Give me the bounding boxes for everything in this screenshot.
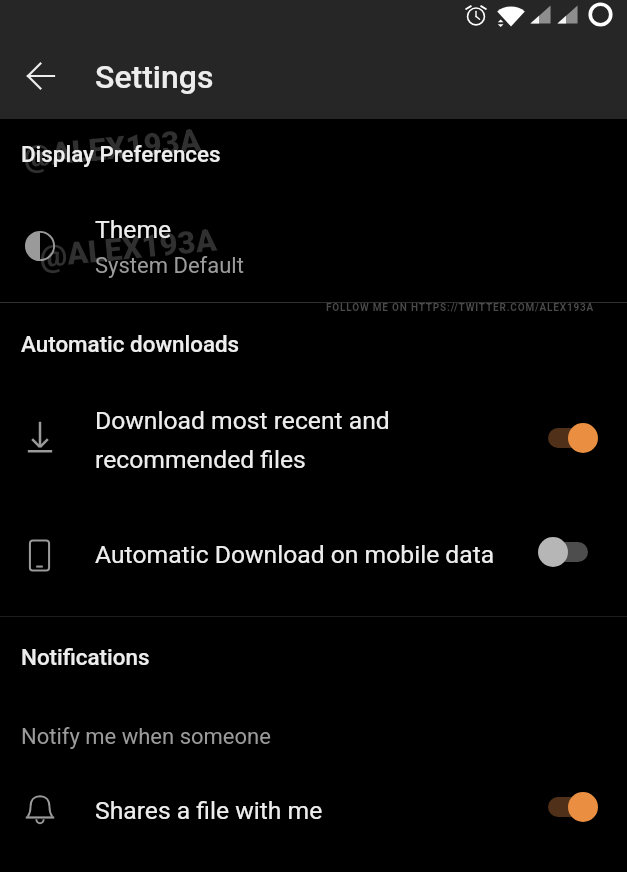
staticText: @ALEX193A [38,222,218,274]
staticText: Shares a file with me [95,796,323,825]
button[interactable]: Automatic Download on mobile data [0,523,627,585]
button[interactable]: Enabled [538,791,598,823]
button[interactable]: Shares a file with me [0,779,627,841]
staticText: Notifications [21,644,150,670]
other: Alarm set [463,2,489,28]
staticText: Display Preferences [21,141,221,167]
button[interactable]: Theme [0,205,627,287]
staticText: FOLLOW ME ON HTTPS://TWITTER.COM/ALEX193… [326,302,595,314]
button[interactable]: Back [15,50,67,102]
other: Battery [588,2,613,27]
other: Signal [557,4,578,25]
other: Wi-Fi [496,3,526,33]
button[interactable]: Enabled [538,422,598,454]
staticText: @ALEX193A [22,122,202,174]
staticText: Settings [95,58,214,96]
staticText: Notify me when someone [21,724,271,750]
button[interactable]: Disabled [538,536,598,568]
staticText: Theme [95,215,172,244]
button[interactable]: Download most recent and recommended fil… [0,399,627,485]
staticText: Automatic downloads [21,331,240,357]
staticText: System Default [95,253,244,279]
staticText: Download most recent and recommended fil… [95,406,390,474]
staticText: Automatic Download on mobile data [95,540,495,569]
other: Signal [530,4,551,25]
